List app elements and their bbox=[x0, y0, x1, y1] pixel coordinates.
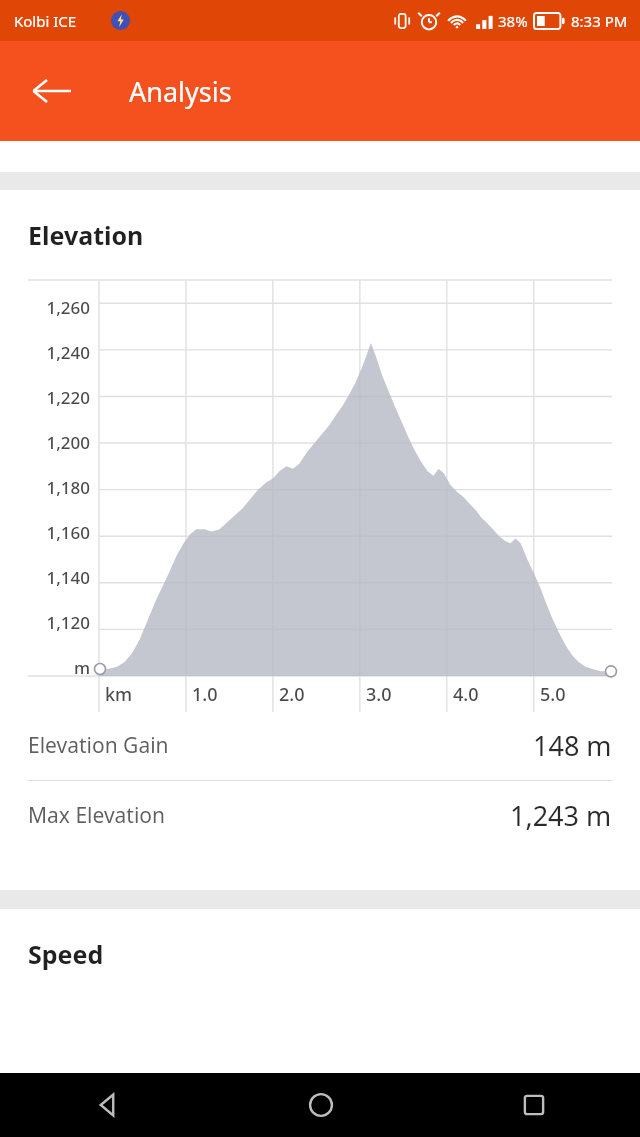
staticText: 148 m bbox=[533, 727, 612, 764]
staticText: 1,120 bbox=[0, 611, 90, 634]
staticText: 1,240 bbox=[0, 341, 90, 364]
staticText: Analysis bbox=[129, 73, 232, 110]
staticText: Kolbi ICE bbox=[14, 11, 77, 31]
staticText: 4.0 bbox=[453, 682, 479, 707]
staticText: 1,220 bbox=[0, 386, 90, 409]
button[interactable]: Max Elevation bbox=[0, 781, 640, 850]
staticText: 1,180 bbox=[0, 476, 90, 499]
staticText: 1.0 bbox=[192, 682, 218, 707]
staticText: 1,140 bbox=[0, 566, 90, 589]
staticText: 5.0 bbox=[540, 682, 566, 707]
button[interactable]: Elevation Gain bbox=[0, 711, 640, 780]
button[interactable]: Recent apps bbox=[427, 1073, 640, 1137]
button[interactable]: Back bbox=[0, 1073, 214, 1137]
staticText: Elevation bbox=[28, 218, 144, 252]
staticText: 1,260 bbox=[0, 296, 90, 319]
staticText: 2.0 bbox=[279, 682, 305, 707]
staticText: km bbox=[105, 682, 133, 707]
staticText: 1,243 m bbox=[510, 797, 612, 834]
staticText: 8:33 PM bbox=[571, 11, 628, 31]
staticText: 1,200 bbox=[0, 431, 90, 454]
staticText: Speed bbox=[28, 937, 104, 971]
staticText: m bbox=[0, 656, 90, 679]
staticText: 38% bbox=[498, 11, 528, 31]
button[interactable]: Home bbox=[214, 1073, 427, 1137]
staticText: Max Elevation bbox=[28, 801, 166, 830]
staticText: 3.0 bbox=[366, 682, 392, 707]
button[interactable]: Back bbox=[15, 55, 87, 127]
staticText: Elevation Gain bbox=[28, 731, 169, 760]
staticText: 1,160 bbox=[0, 521, 90, 544]
